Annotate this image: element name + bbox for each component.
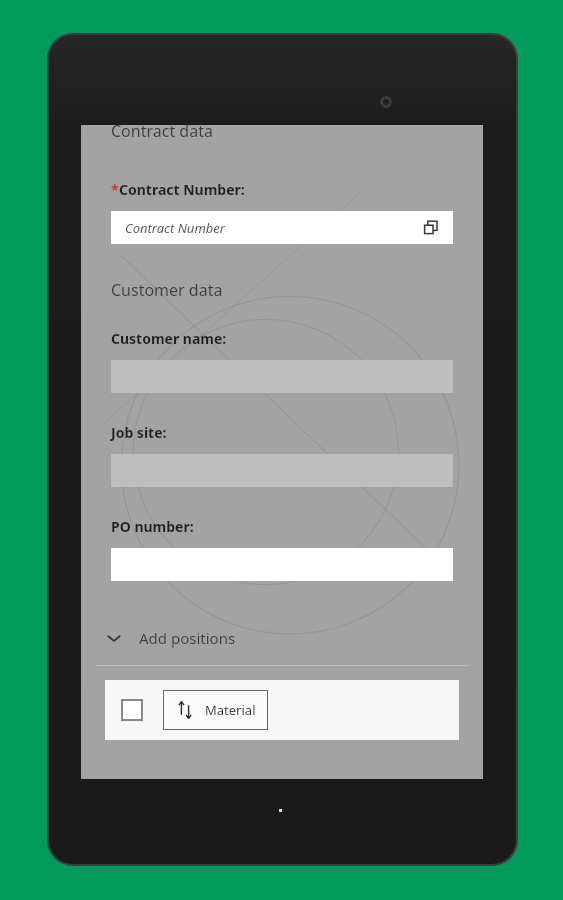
button[interactable]: Contract Number [111,211,453,244]
staticText: Material [205,701,256,719]
staticText: Contract Number [125,219,421,237]
button[interactable]: Add positions [103,625,483,651]
staticText: PO number: [111,517,194,536]
staticText: Add positions [139,628,236,648]
staticText: * [111,180,119,199]
staticText: Contract data [111,120,213,142]
staticText: Contract Number: [119,180,245,199]
staticText: Job site: [111,423,167,442]
button[interactable]: Select position [105,680,459,740]
staticText: Customer name: [111,329,227,348]
button[interactable]: Select position [121,699,143,721]
button[interactable]: Copy contract number [421,218,441,238]
staticText: Customer data [111,279,223,301]
button[interactable]: Material [163,690,268,730]
